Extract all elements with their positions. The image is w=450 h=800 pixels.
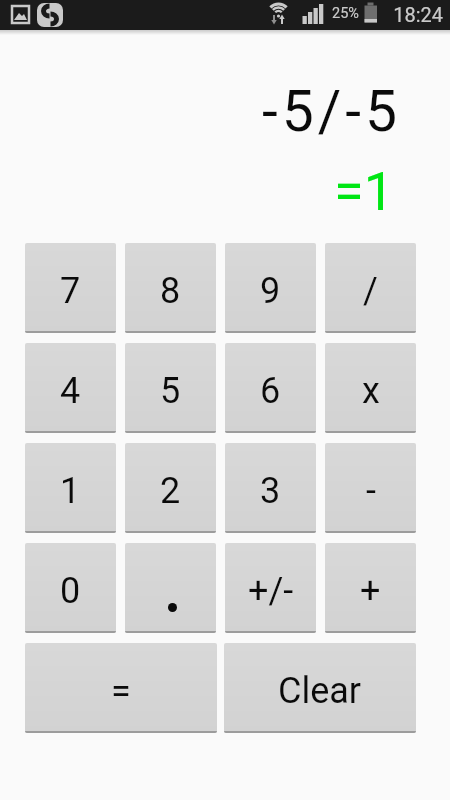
staticText: 4 [60, 370, 81, 412]
staticText: 7 [60, 270, 81, 312]
button[interactable]: 3 [225, 443, 316, 533]
button[interactable]: 0 [25, 543, 116, 633]
staticText: - [366, 470, 376, 512]
staticText: Clear [278, 670, 362, 712]
staticText: 8 [160, 270, 181, 312]
staticText: 6 [260, 370, 281, 412]
button[interactable]: 7 [25, 243, 116, 333]
staticText: -5/-5 [0, 78, 401, 145]
button[interactable]: - [325, 443, 416, 533]
button[interactable] [125, 543, 216, 633]
button[interactable]: 9 [225, 243, 316, 333]
button[interactable]: / [325, 243, 416, 333]
button[interactable]: + [325, 543, 416, 633]
button[interactable]: +/- [225, 543, 316, 633]
staticText: 25% [332, 5, 359, 22]
button[interactable]: Clear [224, 643, 416, 733]
staticText: =1 [0, 160, 394, 223]
staticText: = [111, 670, 131, 712]
staticText: 5 [160, 370, 181, 412]
staticText: 0 [60, 570, 81, 612]
staticText: 2 [160, 470, 181, 512]
staticText: 9 [260, 270, 281, 312]
button[interactable]: 2 [125, 443, 216, 533]
staticText: + [360, 570, 381, 612]
staticText: 3 [260, 470, 281, 512]
staticText: x [362, 370, 380, 412]
button[interactable]: 8 [125, 243, 216, 333]
staticText: 1 [60, 470, 81, 512]
staticText: +/- [248, 570, 294, 612]
button[interactable]: 5 [125, 343, 216, 433]
button[interactable]: x [325, 343, 416, 433]
button[interactable]: 4 [25, 343, 116, 433]
button[interactable]: 1 [25, 443, 116, 533]
button[interactable]: = [25, 643, 217, 733]
staticText: / [363, 270, 378, 312]
staticText: 18:24 [0, 3, 443, 26]
button[interactable]: 6 [225, 343, 316, 433]
